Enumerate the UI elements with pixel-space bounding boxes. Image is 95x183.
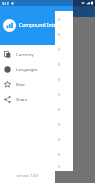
- button[interactable]: Share: [0, 92, 55, 107]
- staticText: 0: [58, 164, 61, 169]
- staticText: Share: [16, 97, 28, 103]
- staticText: 0: [58, 77, 61, 82]
- staticText: 0: [58, 152, 61, 157]
- button[interactable]: Rate: [0, 77, 55, 92]
- staticText: 0: [58, 62, 61, 67]
- staticText: Compound Interest: [19, 22, 55, 29]
- staticText: 0: [58, 122, 61, 127]
- staticText: Currency: [16, 52, 34, 58]
- staticText: +: [83, 76, 86, 83]
- staticText: Languages: [16, 67, 38, 73]
- staticText: 0: [58, 92, 61, 97]
- staticText: 0: [58, 47, 61, 52]
- button[interactable]: Languages: [0, 62, 55, 77]
- staticText: 9:12: [2, 1, 9, 6]
- staticText: 0: [58, 107, 61, 112]
- staticText: Rate: [16, 82, 25, 88]
- staticText: 0: [58, 137, 61, 142]
- staticText: ×: [83, 29, 86, 36]
- button[interactable]: Currency: [0, 47, 55, 62]
- staticText: version 1.0.0: [0, 173, 55, 178]
- staticText: 0: [58, 32, 61, 37]
- staticText: 0: [58, 17, 61, 22]
